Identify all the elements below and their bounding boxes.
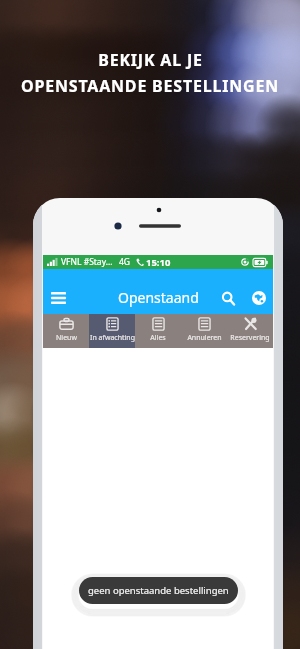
staticText: 15:10 (146, 256, 171, 269)
button[interactable]: geen openstaande bestellingen (79, 577, 238, 604)
staticText: geen openstaande bestellingen (88, 584, 229, 597)
button[interactable]: Nieuw (43, 314, 89, 348)
staticText: Alles (150, 333, 166, 343)
staticText: In afwachting (90, 333, 135, 343)
staticText: Nieuw (56, 333, 77, 343)
button[interactable]: Open navigation menu (45, 285, 71, 311)
staticText: Annuleren (187, 333, 222, 343)
button[interactable]: Alles (135, 314, 181, 348)
staticText: 4G (119, 256, 131, 268)
staticText: OPENSTAANDE BESTELLINGEN (21, 75, 279, 97)
button[interactable]: Change language (246, 285, 272, 311)
button[interactable]: Reservering (227, 314, 273, 348)
staticText: Reservering (230, 333, 270, 343)
staticText: VFNL #Stay… (61, 256, 113, 268)
staticText: Openstaand (118, 288, 199, 307)
staticText: BEKIJK AL JE (98, 49, 203, 71)
button[interactable]: Search (215, 285, 241, 311)
button[interactable]: In afwachting (89, 314, 135, 348)
button[interactable]: Annuleren (181, 314, 227, 348)
